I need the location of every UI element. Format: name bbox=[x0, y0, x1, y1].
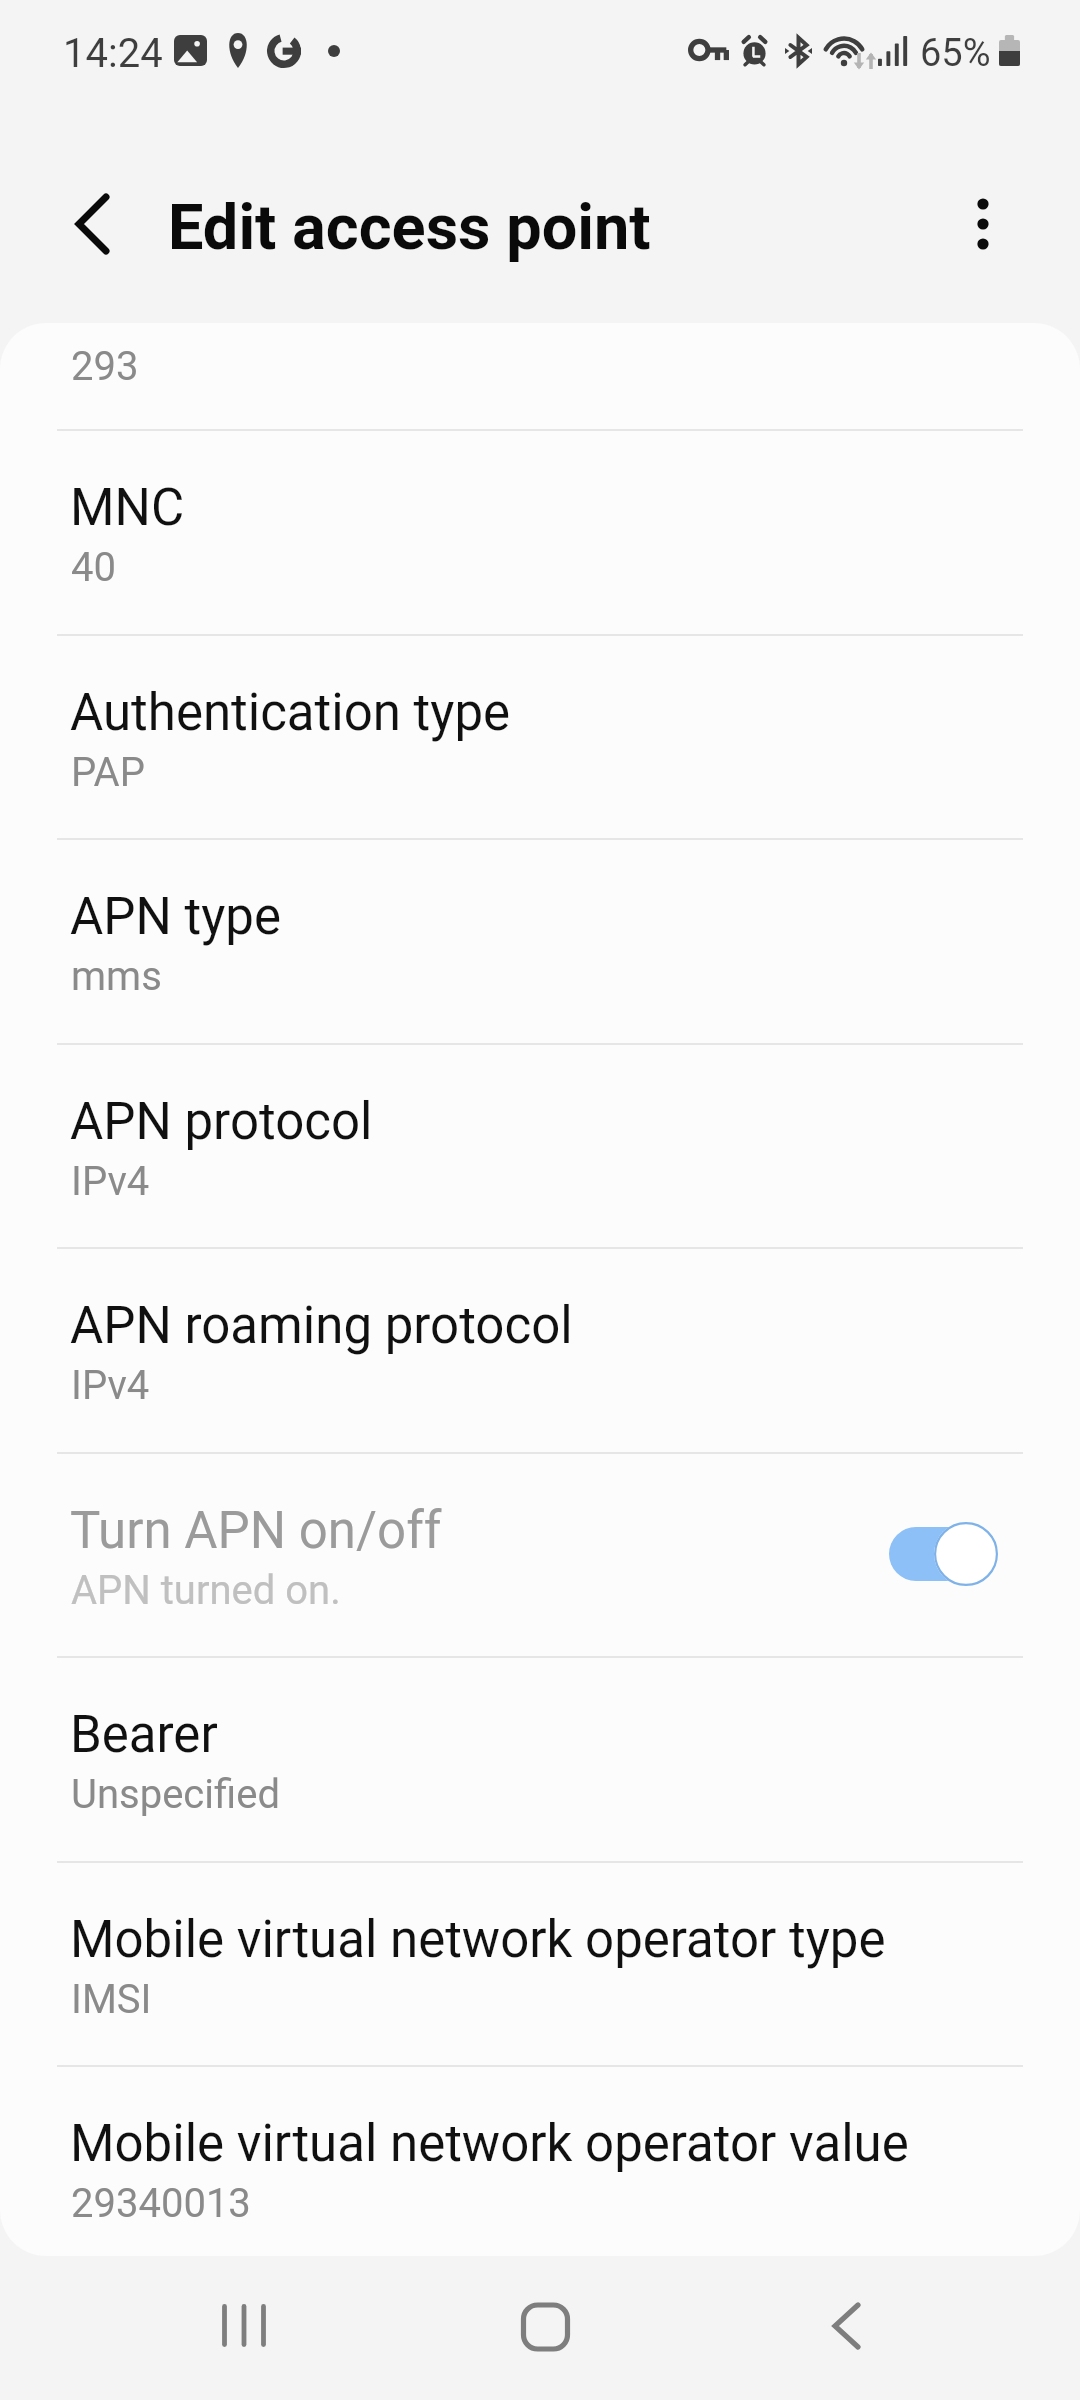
button[interactable]: Bearer bbox=[0, 1656, 1080, 1861]
staticText: IPv4 bbox=[71, 1158, 150, 1205]
staticText: Authentication type bbox=[70, 683, 511, 743]
staticText: 293 bbox=[71, 343, 139, 390]
button[interactable]: Navigate up bbox=[45, 171, 141, 263]
staticText: PAP bbox=[71, 749, 145, 796]
staticText: 65% bbox=[920, 31, 991, 76]
button[interactable]: APN roaming protocol bbox=[0, 1247, 1080, 1452]
staticText: Mobile virtual network operator type bbox=[70, 1910, 886, 1970]
staticText: APN turned on. bbox=[71, 1567, 341, 1614]
staticText: Mobile virtual network operator value bbox=[70, 2114, 909, 2174]
staticText: Turn APN on/off bbox=[70, 1501, 442, 1561]
button[interactable]: Turn APN on/off bbox=[889, 1519, 999, 1589]
button[interactable]: 293 bbox=[0, 323, 1080, 429]
button[interactable]: Mobile virtual network operator type bbox=[0, 1861, 1080, 2066]
button[interactable]: Authentication type bbox=[0, 634, 1080, 839]
button[interactable]: Home bbox=[484, 2264, 604, 2392]
staticText: IPv4 bbox=[71, 1362, 150, 1409]
staticText: APN type bbox=[70, 887, 281, 947]
button[interactable]: APN protocol bbox=[0, 1043, 1080, 1248]
staticText: Edit access point bbox=[168, 191, 651, 265]
button[interactable]: Recent apps bbox=[184, 2264, 304, 2392]
button[interactable]: Turn APN on/off bbox=[0, 1452, 1080, 1657]
staticText: mms bbox=[71, 953, 162, 1000]
button[interactable]: MNC bbox=[0, 429, 1080, 634]
staticText: 14:24 bbox=[63, 30, 163, 77]
staticText: Unspecified bbox=[71, 1771, 280, 1818]
staticText: APN protocol bbox=[70, 1092, 373, 1152]
staticText: 29340013 bbox=[71, 2180, 251, 2227]
staticText: IMSI bbox=[71, 1976, 152, 2023]
staticText: MNC bbox=[70, 478, 185, 538]
button[interactable]: Mobile virtual network operator value bbox=[0, 2065, 1080, 2256]
staticText: Bearer bbox=[70, 1705, 218, 1765]
button[interactable]: APN type bbox=[0, 838, 1080, 1043]
button[interactable]: More options bbox=[937, 178, 1029, 270]
staticText: APN roaming protocol bbox=[70, 1296, 573, 1356]
button[interactable]: Back bbox=[787, 2264, 907, 2392]
staticText: 40 bbox=[71, 544, 116, 591]
